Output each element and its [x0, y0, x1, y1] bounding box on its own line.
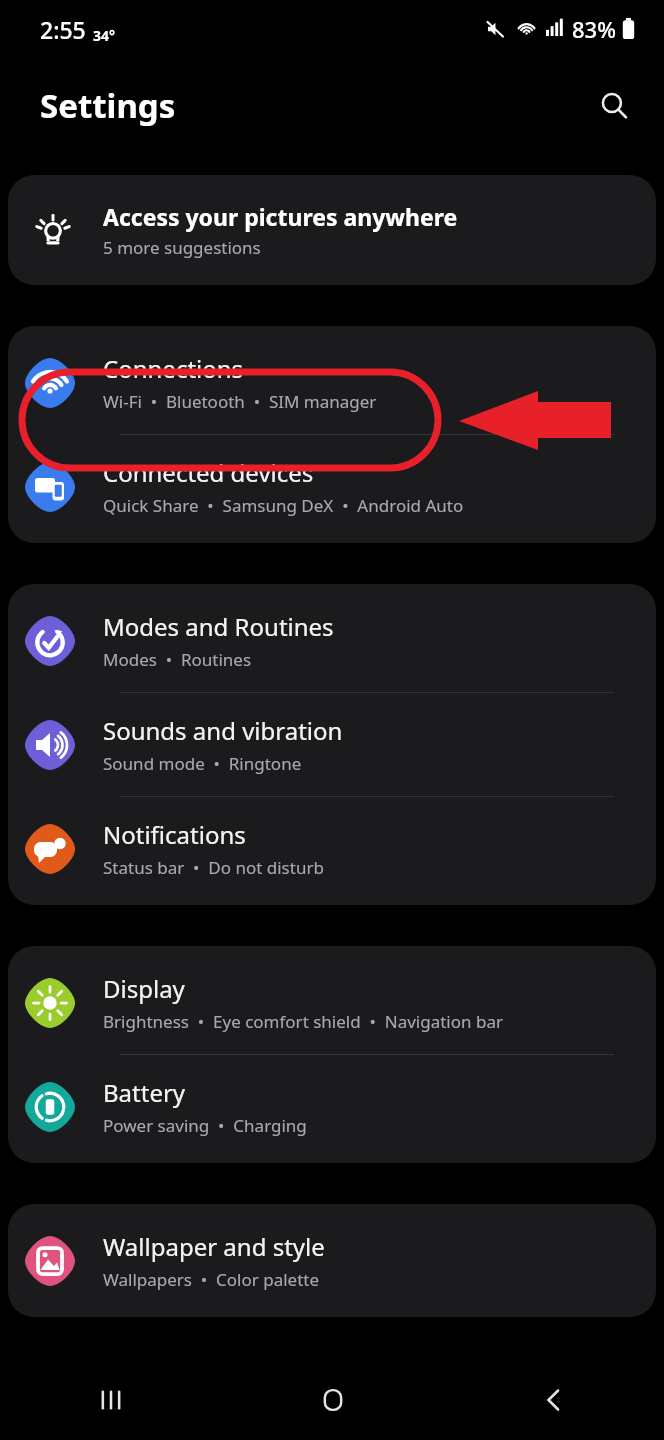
- staticText: Status bar • Do not disturb: [103, 856, 324, 879]
- staticText: Modes and Routines: [103, 610, 334, 643]
- staticText: 5 more suggestions: [103, 236, 261, 259]
- staticText: 34°: [93, 26, 115, 45]
- button[interactable]: Home: [222, 1360, 443, 1440]
- staticText: Notifications: [103, 818, 246, 851]
- staticText: Connections: [103, 352, 244, 385]
- staticText: Wallpapers • Color palette: [103, 1268, 320, 1291]
- staticText: Power saving • Charging: [103, 1114, 307, 1137]
- button[interactable]: Recents: [0, 1360, 222, 1440]
- staticText: 2:55: [40, 14, 86, 45]
- button[interactable]: Display: [8, 946, 656, 1054]
- staticText: Modes • Routines: [103, 648, 252, 671]
- button[interactable]: Battery: [8, 1055, 656, 1163]
- button[interactable]: Search: [590, 82, 638, 130]
- button[interactable]: Connections: [8, 326, 656, 434]
- staticText: Quick Share • Samsung DeX • Android Auto: [103, 494, 464, 517]
- staticText: Display: [103, 972, 185, 1005]
- staticText: Access your pictures anywhere: [103, 201, 458, 232]
- staticText: 83%: [572, 14, 616, 44]
- staticText: Sound mode • Ringtone: [103, 752, 302, 775]
- button[interactable]: Connected devices: [8, 435, 656, 543]
- staticText: Brightness • Eye comfort shield • Naviga…: [103, 1010, 503, 1033]
- staticText: Settings: [40, 83, 176, 128]
- button[interactable]: Back: [443, 1360, 664, 1440]
- button[interactable]: Modes and Routines: [8, 584, 656, 692]
- button[interactable]: Sounds and vibration: [8, 693, 656, 796]
- staticText: Connected devices: [103, 456, 314, 489]
- button[interactable]: Wallpaper and style: [8, 1204, 656, 1317]
- staticText: Wi-Fi • Bluetooth • SIM manager: [103, 390, 377, 413]
- staticText: Sounds and vibration: [103, 714, 343, 747]
- staticText: Wallpaper and style: [103, 1230, 325, 1263]
- staticText: Battery: [103, 1076, 186, 1109]
- button[interactable]: Notifications: [8, 797, 656, 905]
- button[interactable]: Access your pictures anywhere: [8, 175, 656, 285]
